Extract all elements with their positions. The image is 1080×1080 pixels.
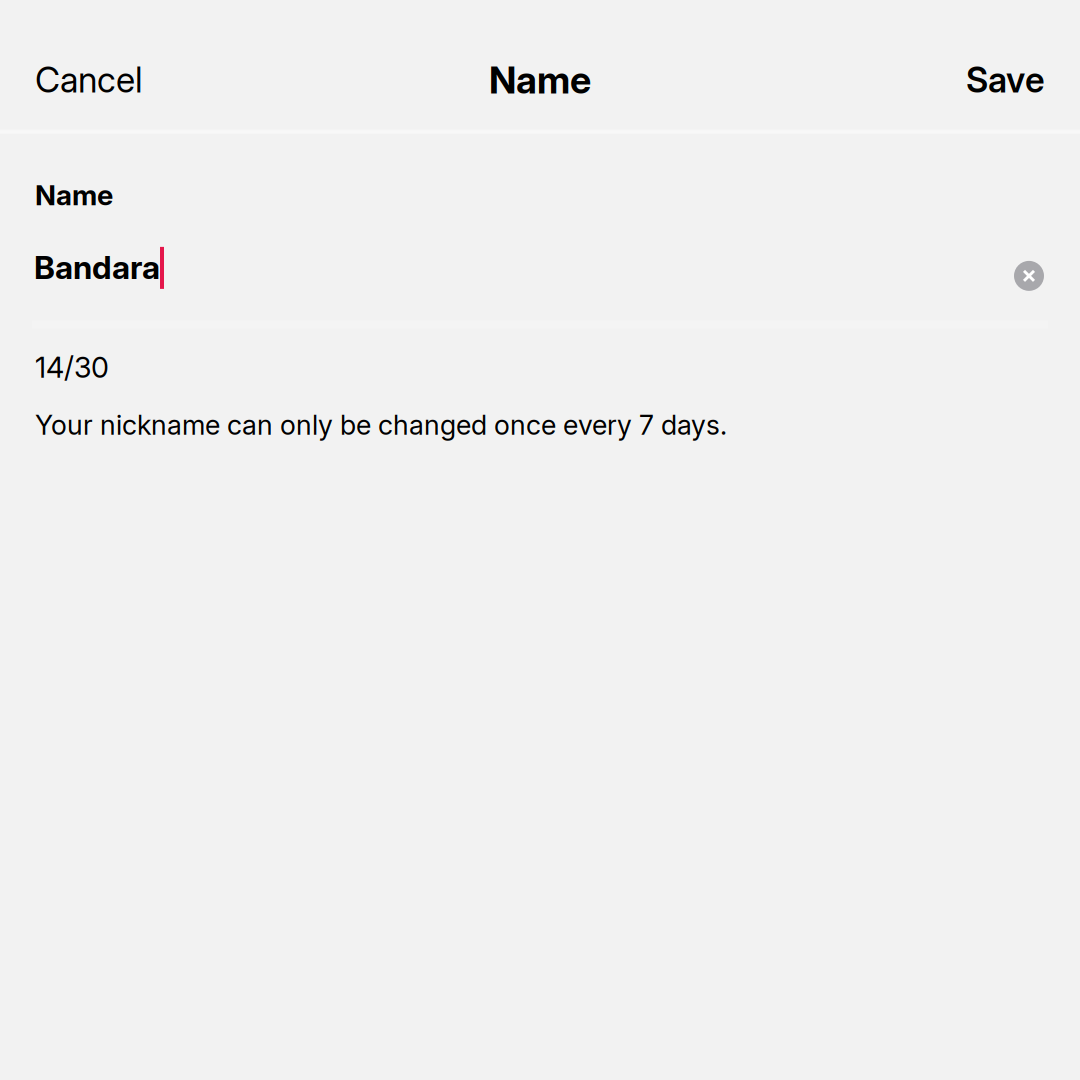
staticText: Cancel [35,59,143,101]
staticText: Name [35,178,113,212]
staticText: Bandara [34,248,160,287]
staticText: Save [966,59,1045,101]
staticText: 14/30 [35,350,109,385]
button[interactable]: Cancel [35,12,143,117]
button[interactable]: Save [966,12,1045,117]
button[interactable]: Clear text [1014,243,1044,291]
staticText: Your nickname can only be changed once e… [35,409,727,441]
staticText: Name [489,57,591,103]
